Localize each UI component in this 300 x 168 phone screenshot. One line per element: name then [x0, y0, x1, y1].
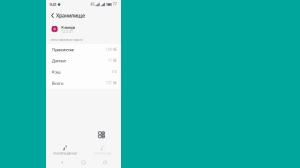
staticText: Приложение: [52, 47, 74, 52]
staticText: Очистить кэш: [94, 152, 111, 155]
staticText: Данные: [52, 58, 66, 63]
staticText: Всего: [52, 80, 63, 86]
staticText: 77: [113, 3, 117, 6]
staticText: Хранилище: [56, 12, 85, 19]
button[interactable]: Back: [49, 11, 56, 20]
staticText: Использование памяти: [51, 38, 83, 42]
staticText: 12.3.41: [61, 30, 73, 33]
button[interactable]: Очистить данные: [46, 143, 83, 157]
button[interactable]: Очистить кэш: [83, 143, 121, 157]
button[interactable]: Home: [73, 157, 94, 168]
button[interactable]: Recent apps: [94, 157, 116, 168]
staticText: 17 МБ: [108, 59, 117, 62]
staticText: Кэш: [52, 69, 61, 75]
staticText: Камера: [61, 24, 75, 30]
staticText: 9:41: [49, 2, 56, 7]
button[interactable]: Back: [51, 157, 73, 168]
staticText: 120 МБ: [106, 48, 117, 51]
staticText: 0 Б: [112, 70, 117, 74]
staticText: 4G: [90, 3, 94, 6]
staticText: Очистить данные: [53, 152, 76, 155]
staticText: 137 МБ: [106, 81, 117, 85]
